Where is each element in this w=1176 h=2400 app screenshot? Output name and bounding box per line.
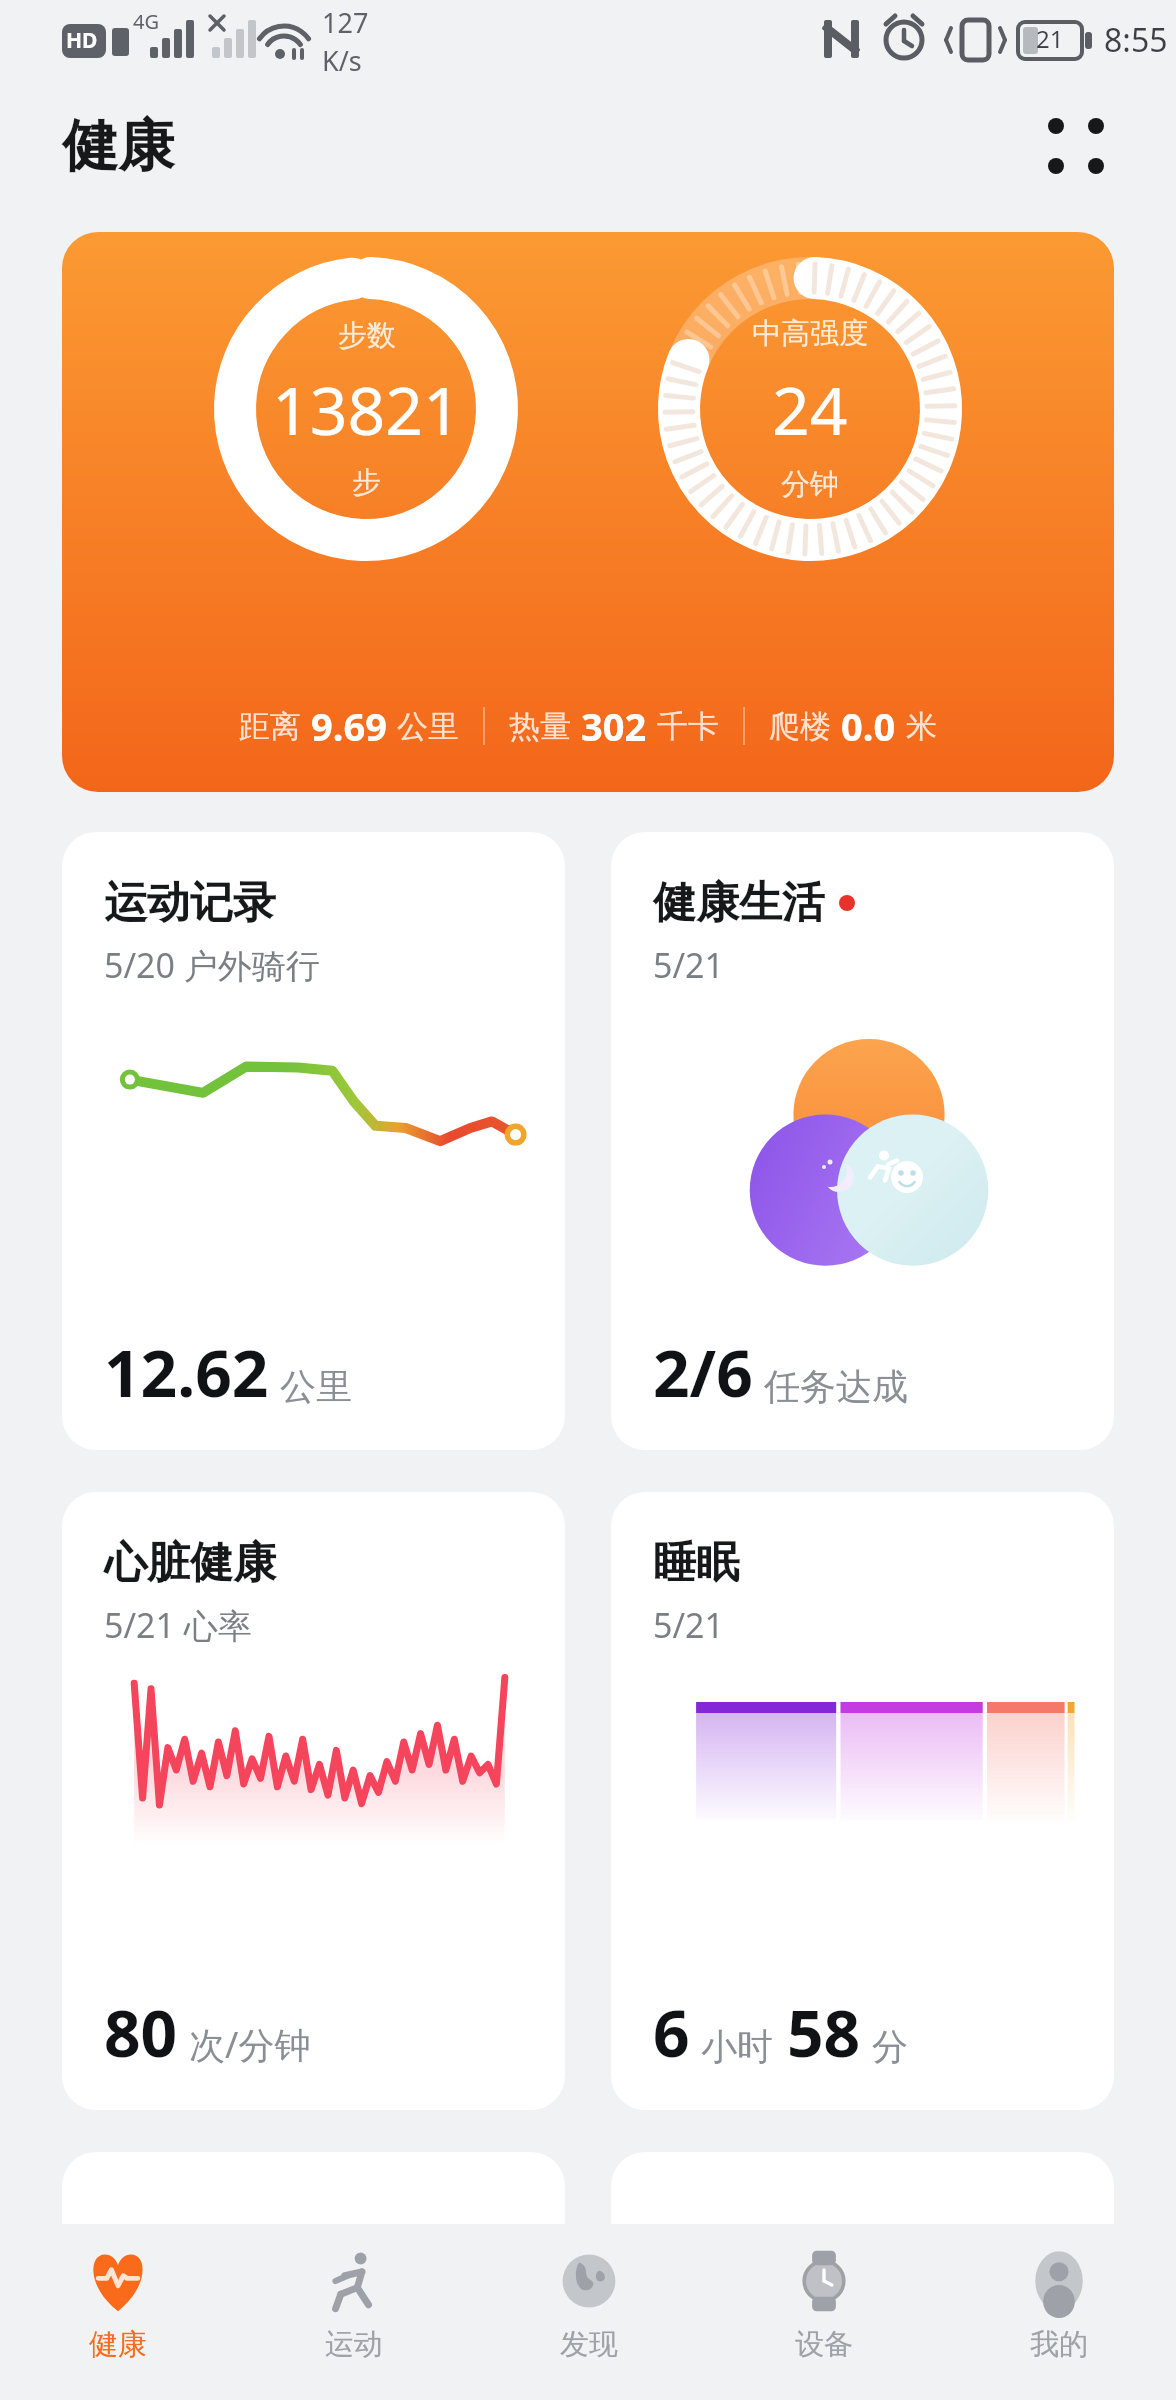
staticText: 公里 — [397, 707, 459, 746]
button[interactable]: 睡眠 — [611, 1492, 1114, 2110]
staticText: 5/20 户外骑行 — [104, 942, 320, 988]
staticText: 127 — [322, 4, 369, 41]
staticText: 302 — [581, 700, 647, 752]
staticText: 58 — [787, 1989, 861, 2076]
staticText: 9.69 — [311, 700, 387, 752]
staticText: 12.62 — [104, 1329, 269, 1416]
staticText: 我的 — [1030, 2326, 1088, 2363]
staticText: 80 — [104, 1989, 178, 2076]
staticText: 13821 — [272, 364, 461, 454]
staticText: 0.0 — [841, 700, 896, 752]
staticText: 分 — [872, 2024, 908, 2069]
button[interactable] — [611, 2152, 1114, 2282]
staticText: 健康 — [89, 2326, 147, 2363]
staticText: 24 — [772, 364, 848, 454]
staticText: 6 — [653, 1989, 690, 2076]
staticText: 健康 — [62, 111, 174, 182]
staticText: 运动 — [325, 2326, 383, 2363]
button[interactable]: 健康生活 — [611, 832, 1114, 1450]
staticText: 距离 — [239, 707, 301, 746]
staticText: 分钟 — [781, 466, 839, 503]
staticText: 步数 — [338, 317, 396, 354]
staticText: HD — [66, 26, 98, 55]
staticText: 公里 — [280, 1364, 352, 1409]
staticText: K/s — [322, 42, 362, 79]
staticText: 次/分钟 — [189, 2020, 311, 2069]
staticText: 步 — [352, 464, 381, 501]
staticText: 热量 — [509, 707, 571, 746]
staticText: 2/6 — [653, 1329, 753, 1416]
button[interactable]: 运动 — [236, 2224, 471, 2400]
staticText: 千卡 — [657, 707, 719, 746]
staticText: 小时 — [701, 2024, 773, 2069]
button[interactable]: 我的 — [941, 2224, 1176, 2400]
button[interactable]: 运动记录 — [62, 832, 565, 1450]
staticText: 米 — [906, 707, 937, 746]
button[interactable] — [62, 2152, 565, 2282]
button[interactable]: 发现 — [471, 2224, 706, 2400]
staticText: 8:55 — [1104, 18, 1168, 62]
button[interactable]: More options — [1028, 98, 1124, 194]
staticText: 5/21 — [653, 1602, 724, 1648]
staticText: 4G — [133, 8, 159, 35]
staticText: 心脏健康 — [104, 1536, 276, 1590]
staticText: 5/21 心率 — [104, 1602, 252, 1648]
staticText: 5/21 — [653, 942, 724, 988]
staticText: 睡眠 — [653, 1536, 739, 1590]
staticText: 健康生活 — [653, 876, 825, 930]
staticText: 运动记录 — [104, 876, 276, 930]
staticText: 21 — [1036, 22, 1064, 55]
staticText: 爬楼 — [769, 707, 831, 746]
button[interactable]: 健康 — [0, 2224, 236, 2400]
staticText: 设备 — [795, 2326, 853, 2363]
staticText: 中高强度 — [752, 315, 868, 352]
button[interactable]: 设备 — [706, 2224, 941, 2400]
button[interactable]: 步数 — [62, 232, 1114, 792]
staticText: 任务达成 — [764, 1364, 908, 1409]
staticText: 发现 — [560, 2326, 618, 2363]
button[interactable]: 心脏健康 — [62, 1492, 565, 2110]
